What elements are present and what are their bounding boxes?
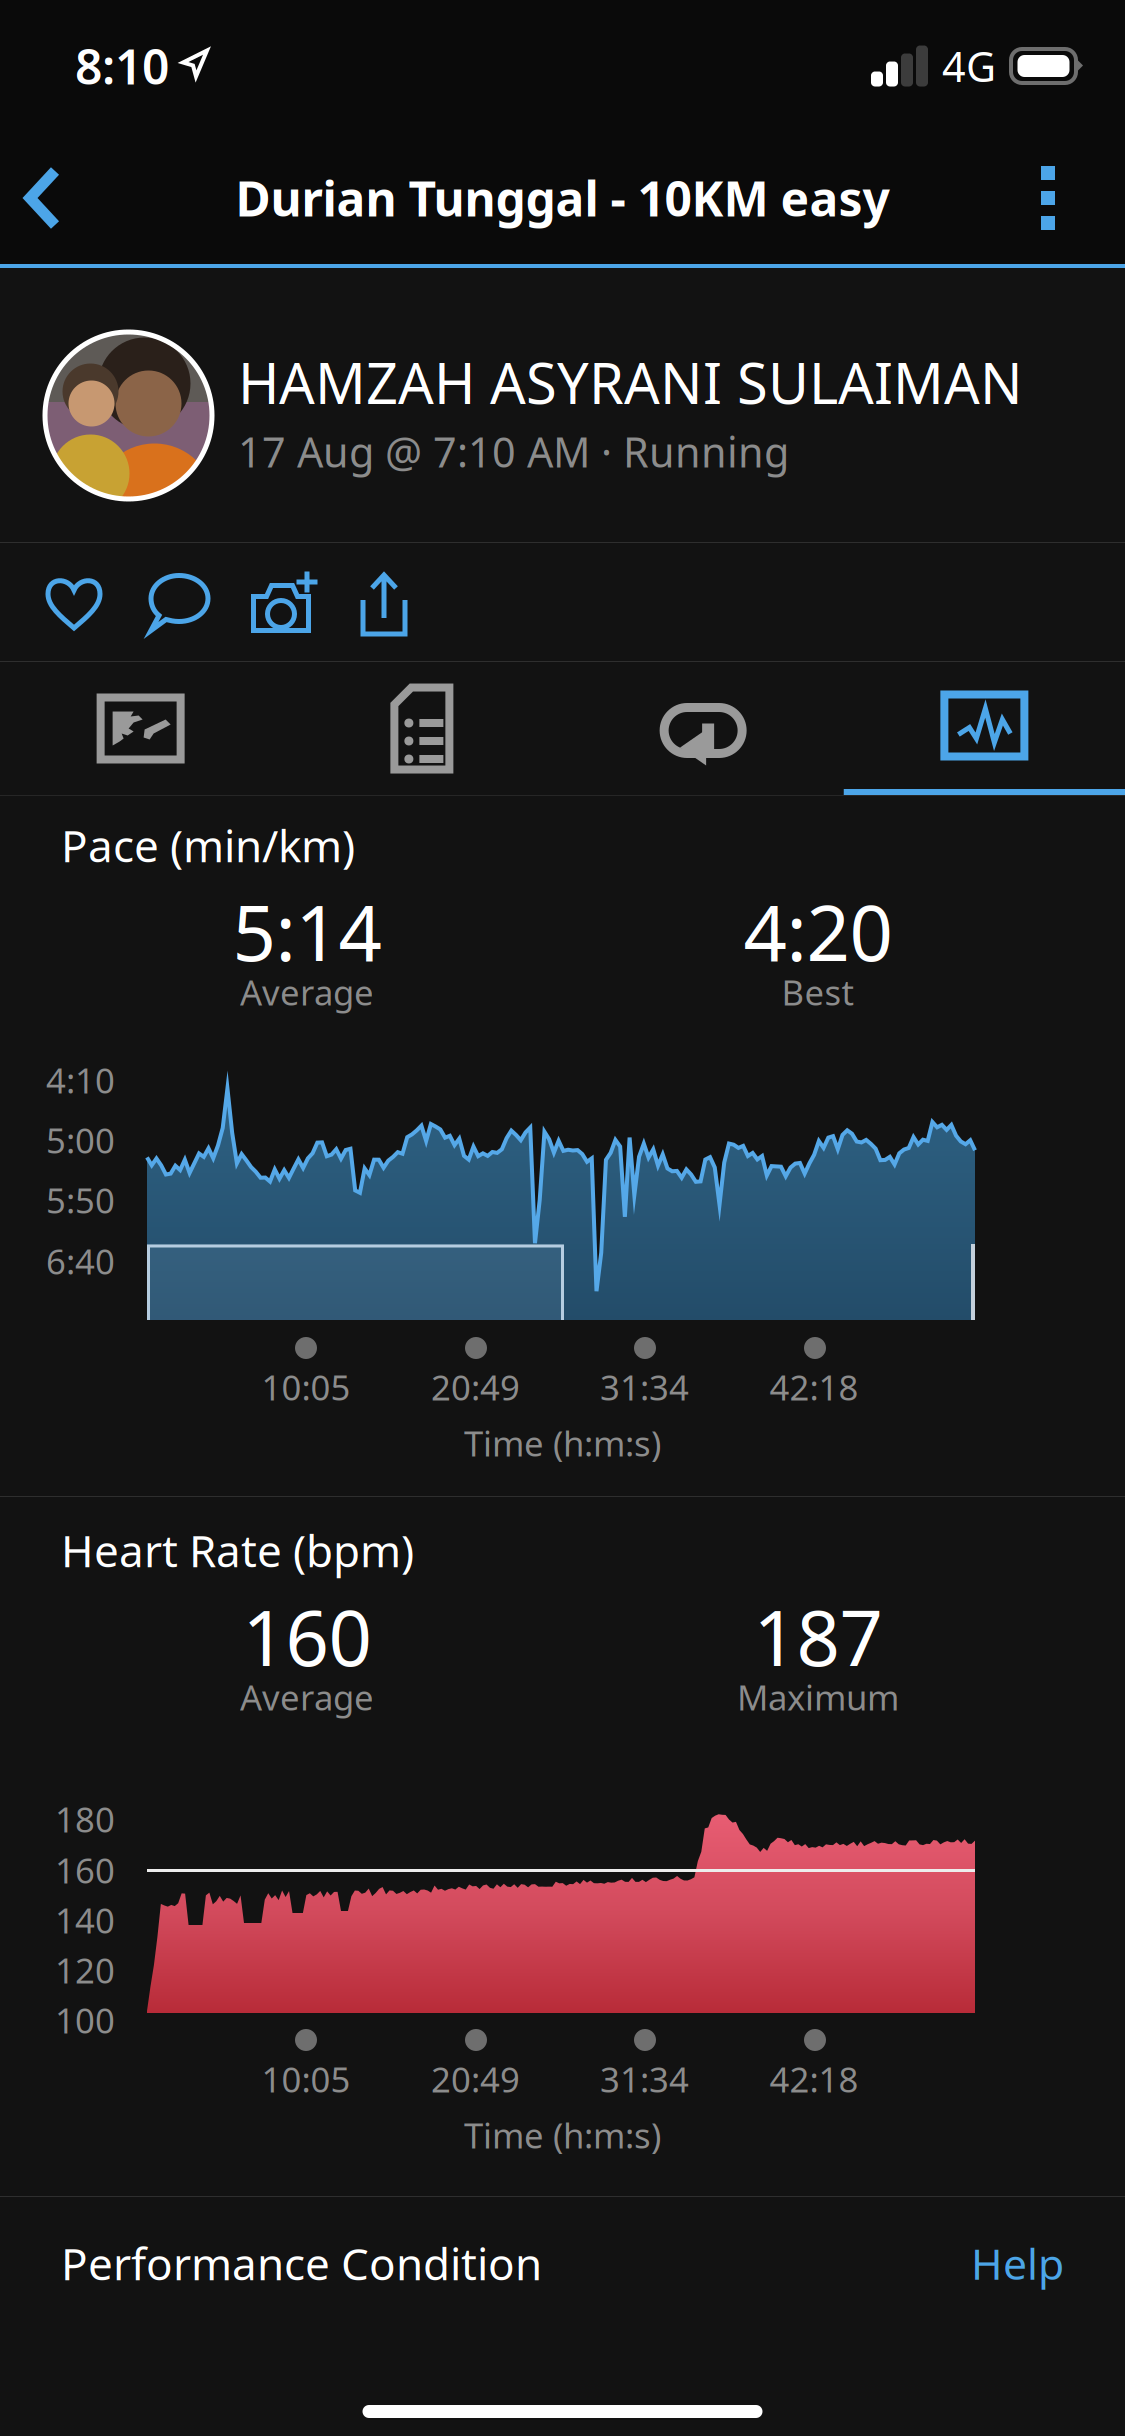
staticText: Durian Tunggal - 10KM easy — [235, 166, 889, 230]
staticText: 10:05 — [261, 2056, 350, 2102]
staticText: 31:34 — [600, 2056, 689, 2102]
button[interactable]: Charts — [844, 662, 1125, 795]
button[interactable]: Comment — [128, 545, 231, 660]
staticText: 187 — [753, 1586, 882, 1687]
button[interactable]: Add photo — [231, 545, 331, 661]
staticText: Time (h:m:s) — [464, 2112, 661, 2158]
button[interactable]: Like — [20, 545, 128, 661]
staticText: 4:20 — [743, 881, 892, 982]
button[interactable]: More options — [1005, 136, 1125, 260]
staticText: 6:40 — [46, 1238, 115, 1284]
staticText: 5:14 — [232, 881, 381, 982]
button[interactable]: Share — [331, 545, 437, 661]
staticText: 140 — [55, 1897, 115, 1943]
staticText: 4G — [942, 39, 996, 93]
staticText: Average — [240, 1674, 374, 1720]
staticText: Performance Condition — [61, 2234, 542, 2292]
staticText: 5:50 — [46, 1177, 115, 1223]
staticText: 42:18 — [769, 1364, 858, 1410]
staticText: 42:18 — [769, 2056, 858, 2102]
staticText: Maximum — [737, 1674, 899, 1720]
button[interactable]: Performance Condition — [0, 2222, 1125, 2304]
staticText: Help — [971, 2235, 1064, 2292]
staticText: 100 — [55, 1997, 115, 2043]
button[interactable]: Back — [0, 132, 92, 264]
button[interactable]: Map — [0, 662, 281, 795]
staticText: 10:05 — [261, 1364, 350, 1410]
staticText: 17 Aug @ 7:10 AM · Running — [238, 424, 789, 479]
staticText: 31:34 — [600, 1364, 689, 1410]
button[interactable]: Laps — [562, 662, 844, 795]
staticText: HAMZAH ASYRANI SULAIMAN — [238, 345, 1023, 419]
staticText: 160 — [242, 1586, 371, 1687]
staticText: 20:49 — [431, 2056, 520, 2102]
staticText: Best — [781, 969, 854, 1015]
staticText: 8:10 — [75, 34, 169, 98]
staticText: Heart Rate (bpm) — [61, 1521, 414, 1579]
staticText: 120 — [55, 1947, 115, 1993]
staticText: Time (h:m:s) — [464, 1420, 661, 1466]
staticText: Pace (min/km) — [61, 816, 355, 874]
button[interactable]: Details — [281, 662, 562, 795]
staticText: 160 — [55, 1847, 115, 1893]
staticText: 5:00 — [46, 1117, 115, 1163]
staticText: 180 — [55, 1796, 115, 1842]
staticText: 20:49 — [431, 1364, 520, 1410]
staticText: Average — [240, 969, 374, 1015]
staticText: 4:10 — [46, 1057, 115, 1103]
